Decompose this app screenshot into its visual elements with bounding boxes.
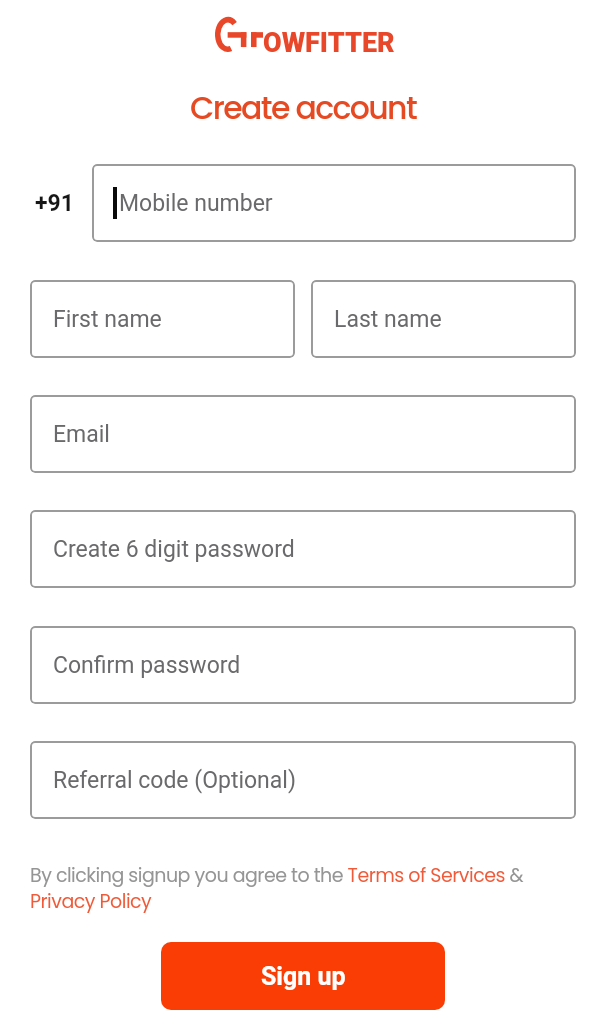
button[interactable]: First name [30,280,295,358]
staticText: Referral code (Optional) [53,767,296,794]
button[interactable]: Referral code (Optional) [30,741,576,819]
button[interactable]: Sign up [161,942,445,1010]
button[interactable]: Create 6 digit password [30,510,576,588]
staticText: Sign up [261,962,346,991]
staticText: First name [53,306,162,333]
button[interactable]: Mobile number [92,164,576,242]
staticText: Confirm password [53,652,241,679]
staticText: Create 6 digit password [53,536,295,563]
staticText: Create account [190,86,417,130]
staticText: OWFITTER [263,27,395,59]
staticText: Last name [334,306,442,333]
staticText: Email [53,421,110,448]
other: Growfitter logo [215,17,263,52]
button[interactable]: By clicking signup you agree to the Term… [30,862,576,915]
staticText: +91 [35,190,74,217]
button[interactable]: Last name [311,280,576,358]
button[interactable]: Email [30,395,576,473]
button[interactable]: Confirm password [30,626,576,704]
staticText: Mobile number [119,190,273,217]
